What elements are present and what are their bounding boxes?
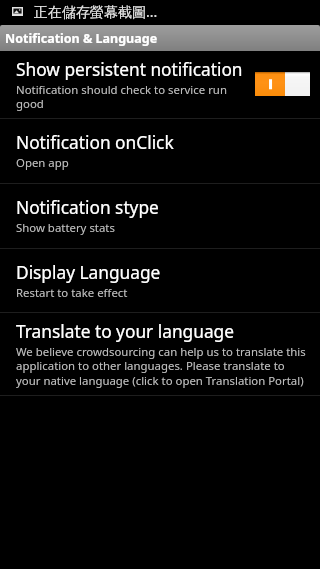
staticText: Notification stype (16, 196, 159, 220)
other: Screenshot saved (12, 7, 23, 16)
staticText: Show persistent notification (16, 58, 243, 82)
staticText: 正在儲存螢幕截圖... (34, 2, 158, 21)
staticText: Notification onClick (16, 131, 174, 155)
staticText: Notification & Language (5, 30, 158, 47)
staticText: Restart to take effect (16, 285, 128, 301)
button[interactable]: Notification stype (0, 184, 320, 248)
staticText: We believe crowdsourcing can help us to … (16, 344, 310, 389)
staticText: Show battery stats (16, 220, 115, 236)
staticText: Open app (16, 155, 69, 171)
staticText: Notification should check to service run… (16, 82, 249, 112)
button[interactable]: Translate to your language (0, 313, 320, 395)
button[interactable]: Notification onClick (0, 119, 320, 183)
button[interactable]: Toggle persistent notification (255, 72, 310, 96)
button[interactable]: Show persistent notification (0, 51, 320, 118)
button[interactable]: Display Language (0, 249, 320, 312)
staticText: Display Language (16, 261, 161, 285)
staticText: Translate to your language (16, 320, 234, 344)
